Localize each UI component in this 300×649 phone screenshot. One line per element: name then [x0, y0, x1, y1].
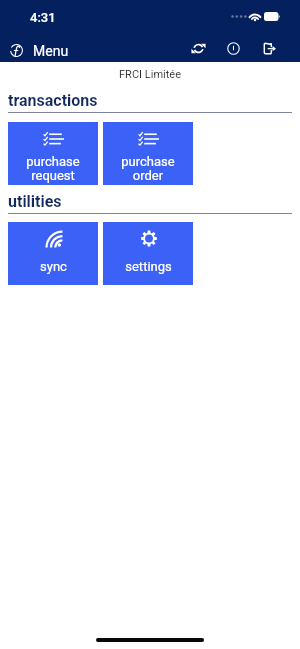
staticText: purchase order [121, 154, 175, 183]
button[interactable]: sync [8, 222, 98, 285]
staticText: transactions [8, 91, 98, 110]
button[interactable]: purchase request [8, 122, 98, 185]
button[interactable]: Info [223, 38, 243, 58]
staticText: FRCI Limitée [0, 68, 300, 81]
button[interactable]: purchase order [103, 122, 193, 185]
button[interactable]: settings [103, 222, 193, 285]
staticText: 4:31 [30, 10, 56, 25]
staticText: settings [125, 259, 172, 274]
button[interactable]: Logout [259, 38, 279, 58]
staticText: sync [40, 259, 67, 274]
button[interactable]: Menu [4, 38, 28, 62]
staticText: purchase request [26, 154, 80, 183]
button[interactable]: Refresh [188, 38, 208, 58]
staticText: Menu [33, 43, 69, 59]
staticText: utilities [8, 192, 62, 211]
